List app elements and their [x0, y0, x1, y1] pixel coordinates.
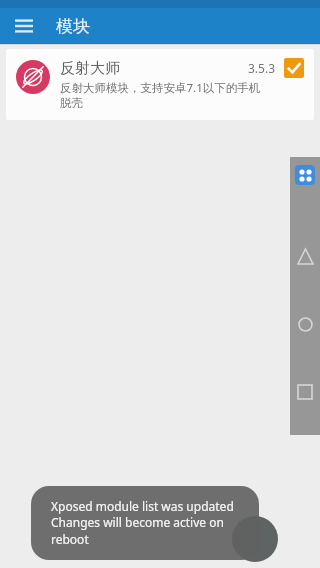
button[interactable]: Open navigation drawer	[8, 10, 40, 42]
button[interactable]: App switcher	[295, 165, 315, 185]
staticText: 3.5.3	[248, 60, 276, 76]
button[interactable]: Action button	[232, 516, 278, 562]
staticText: 反射大师模块，支持安卓7.1以下的手机脱壳	[60, 80, 270, 111]
staticText: 反射大师	[60, 59, 248, 78]
button[interactable]: Home	[292, 311, 318, 337]
button[interactable]: 反射大师	[6, 49, 314, 120]
staticText: Xposed module list was updated Changes w…	[51, 498, 239, 548]
staticText: 模块	[56, 16, 90, 37]
button[interactable]: Back	[292, 243, 318, 269]
button[interactable]: Module enabled	[284, 58, 304, 78]
button[interactable]: Recent apps	[292, 379, 318, 405]
